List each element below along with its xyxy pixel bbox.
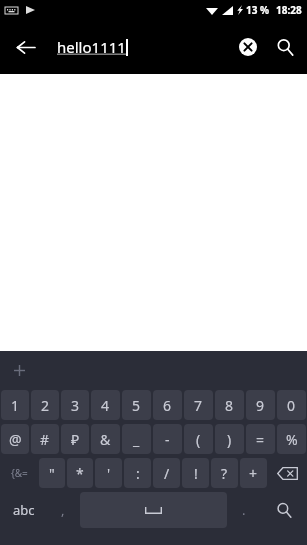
staticText: 0 xyxy=(287,396,296,415)
button[interactable]: {&= xyxy=(1,458,37,488)
staticText: 13 % xyxy=(246,3,270,17)
button[interactable]: Clear text xyxy=(232,31,264,63)
button[interactable]: ) xyxy=(215,424,244,454)
staticText: + xyxy=(249,464,258,483)
button[interactable]: 9 xyxy=(246,390,275,420)
button[interactable]: * xyxy=(67,458,93,488)
button[interactable]: ? xyxy=(211,458,238,488)
button[interactable]: ( xyxy=(184,424,213,454)
button[interactable]: Space xyxy=(80,492,227,528)
button[interactable]: ! xyxy=(182,458,209,488)
button[interactable]: ₽ xyxy=(61,424,89,454)
staticText: 1 xyxy=(11,396,20,415)
staticText: {&= xyxy=(11,466,28,480)
button[interactable]: More suggestions xyxy=(6,357,32,383)
button[interactable]: Search xyxy=(268,30,302,64)
staticText: ( xyxy=(196,430,201,449)
staticText: / xyxy=(164,464,170,483)
staticText: 2 xyxy=(41,396,50,415)
staticText: = xyxy=(256,430,265,449)
staticText: : xyxy=(136,464,140,483)
staticText: 8 xyxy=(225,396,234,415)
staticText: , xyxy=(61,501,65,519)
staticText: ' xyxy=(107,464,111,483)
staticText: 6 xyxy=(163,396,172,415)
button[interactable]: 1 xyxy=(1,390,29,420)
staticText: abc xyxy=(13,501,35,519)
staticText: 7 xyxy=(194,396,203,415)
staticText: 5 xyxy=(132,396,141,415)
button[interactable]: = xyxy=(246,424,275,454)
button[interactable]: Backspace xyxy=(269,458,306,488)
button[interactable]: Search xyxy=(261,492,306,528)
button[interactable]: " xyxy=(39,458,65,488)
staticText: 18:28 xyxy=(276,3,302,17)
button[interactable]: - xyxy=(153,424,182,454)
button[interactable]: @ xyxy=(1,424,29,454)
staticText: " xyxy=(49,464,55,483)
staticText: 4 xyxy=(101,396,110,415)
button[interactable]: _ xyxy=(122,424,151,454)
staticText: ? xyxy=(221,464,228,483)
button[interactable]: . xyxy=(229,492,259,528)
staticText: * xyxy=(76,464,84,483)
button[interactable]: % xyxy=(277,424,306,454)
staticText: ₽ xyxy=(71,430,80,449)
staticText: - xyxy=(165,430,170,449)
button[interactable]: / xyxy=(153,458,180,488)
button[interactable]: + xyxy=(240,458,267,488)
staticText: 3 xyxy=(71,396,80,415)
button[interactable]: 2 xyxy=(31,390,59,420)
staticText: hello1111 xyxy=(57,37,126,57)
staticText: % xyxy=(286,430,298,449)
button[interactable]: ' xyxy=(95,458,122,488)
button[interactable]: , xyxy=(48,492,78,528)
staticText: _ xyxy=(133,430,140,449)
staticText: 9 xyxy=(256,396,265,415)
button[interactable]: : xyxy=(124,458,151,488)
button[interactable]: & xyxy=(91,424,120,454)
button[interactable]: # xyxy=(31,424,59,454)
button[interactable]: 3 xyxy=(61,390,89,420)
button[interactable]: 6 xyxy=(153,390,182,420)
button[interactable]: 7 xyxy=(184,390,213,420)
staticText: # xyxy=(40,430,50,449)
staticText: . xyxy=(242,501,246,519)
button[interactable]: abc xyxy=(1,492,46,528)
button[interactable]: Back xyxy=(6,28,44,66)
button[interactable]: 5 xyxy=(122,390,151,420)
button[interactable]: 0 xyxy=(277,390,306,420)
staticText: ! xyxy=(194,464,198,483)
button[interactable]: 4 xyxy=(91,390,120,420)
staticText: & xyxy=(100,430,111,449)
button[interactable]: 8 xyxy=(215,390,244,420)
staticText: ) xyxy=(227,430,232,449)
staticText: @ xyxy=(9,430,22,449)
